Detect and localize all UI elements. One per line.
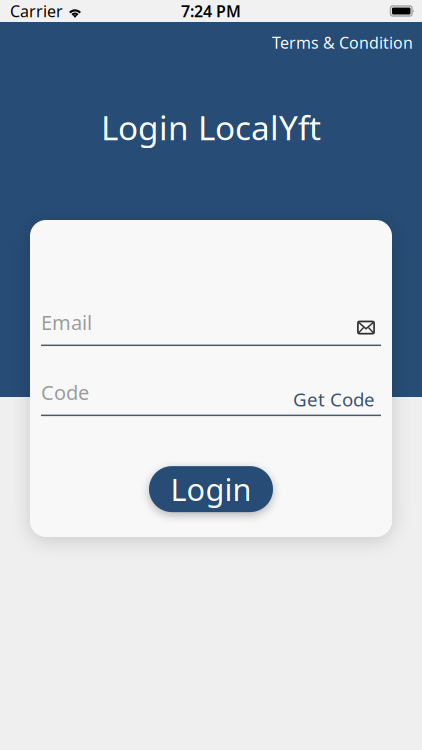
staticText: Terms & Condition [272, 32, 413, 53]
staticText: Get Code [293, 387, 375, 412]
button[interactable]: Code [41, 379, 89, 406]
button[interactable]: Email address [357, 321, 381, 336]
staticText: Code [41, 379, 89, 406]
staticText: 7:24 PM [181, 0, 241, 22]
staticText: Carrier [10, 0, 63, 22]
button[interactable]: Email [41, 309, 92, 336]
button[interactable]: Terms & Condition [263, 25, 422, 60]
button[interactable]: Get Code [293, 387, 381, 406]
button[interactable]: Login [149, 466, 273, 512]
staticText: Email [41, 309, 92, 336]
staticText: Login LocalYft [101, 105, 321, 149]
staticText: Login [170, 469, 251, 509]
